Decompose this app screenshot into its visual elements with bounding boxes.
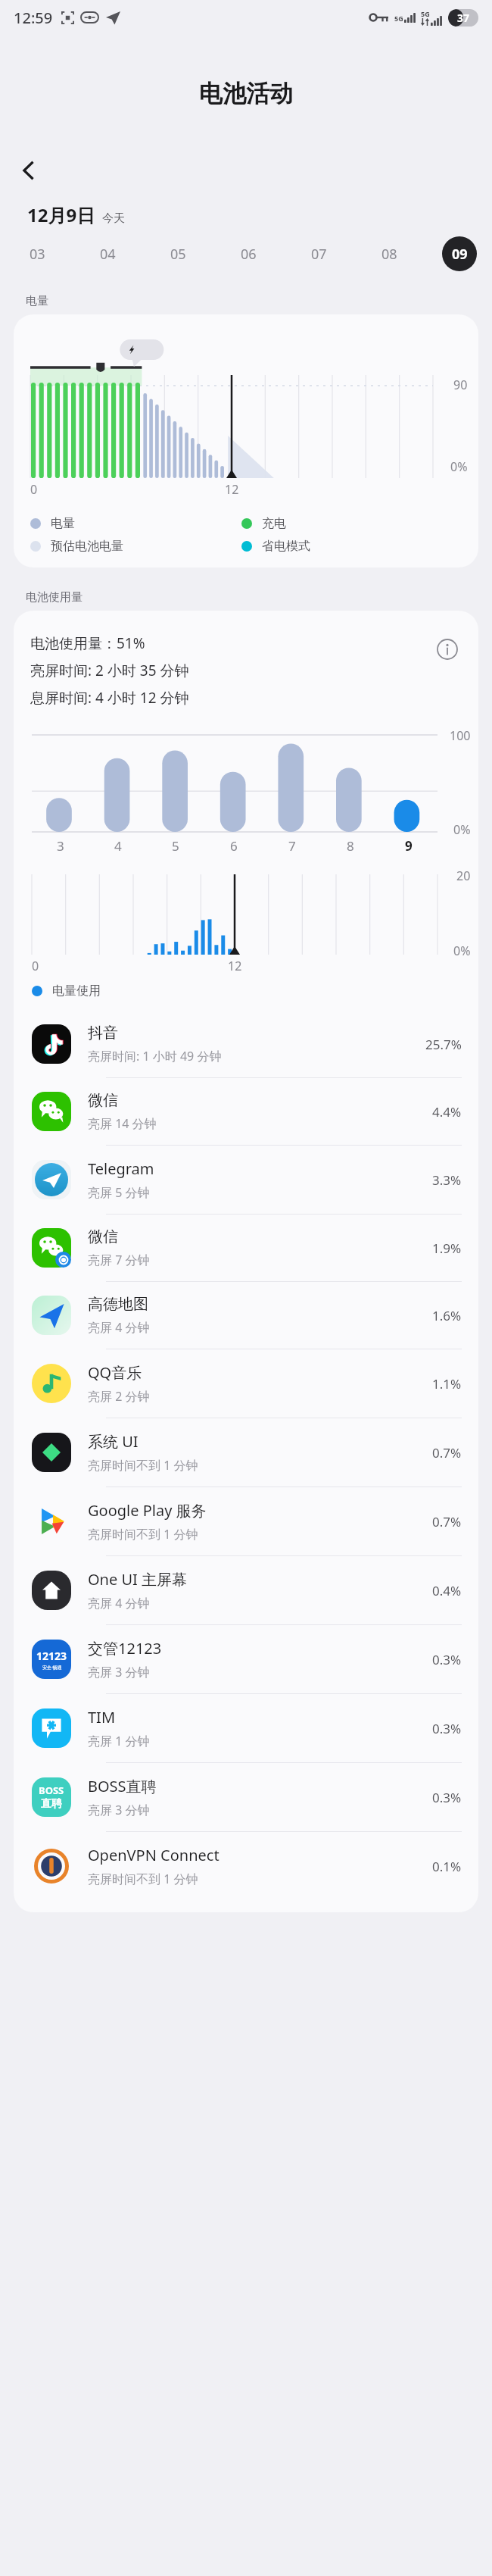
staticText: 预估电池电量 [51, 539, 123, 554]
staticText: 高德地图 [88, 1295, 148, 1314]
staticText: 电池使用量：51% [30, 633, 145, 653]
staticText: 5G [421, 9, 430, 18]
staticText: 微信 [88, 1227, 118, 1246]
staticText: 7 [288, 837, 296, 855]
staticText: 4.4% [432, 1103, 462, 1121]
button[interactable]: 08 [372, 236, 406, 271]
staticText: 09 [452, 245, 468, 264]
staticText: 5G [394, 14, 403, 23]
staticText: 1.1% [432, 1375, 462, 1393]
button[interactable]: Back [9, 151, 48, 190]
staticText: 抖音 [88, 1024, 118, 1043]
staticText: 20 [456, 868, 471, 884]
staticText: 充电 [262, 516, 286, 531]
staticText: 8 [347, 837, 354, 855]
staticText: 1.6% [432, 1307, 462, 1324]
staticText: 100 [450, 727, 471, 744]
staticText: 5 [172, 837, 179, 855]
staticText: 安全·畅通 [42, 1665, 62, 1671]
staticText: 0% [450, 458, 468, 475]
button[interactable]: 高德地图 [14, 1282, 478, 1349]
staticText: 电量 [26, 294, 48, 308]
staticText: 亮屏 3 分钟 [88, 1664, 150, 1680]
staticText: 交管12123 [88, 1638, 162, 1658]
staticText: 1.9% [432, 1240, 462, 1257]
button[interactable]: 系统 UI [14, 1418, 478, 1487]
staticText: 90 [453, 377, 468, 393]
staticText: 0 [32, 958, 39, 974]
staticText: 亮屏时间: 1 小时 49 分钟 [88, 1048, 222, 1064]
staticText: One UI 主屏幕 [88, 1569, 188, 1590]
button[interactable]: 09 [442, 236, 477, 271]
button[interactable]: OpenVPN Connect [14, 1832, 478, 1900]
staticText: 08 [381, 245, 397, 264]
staticText: 今天 [102, 211, 125, 226]
button[interactable]: Google Play 服务 [14, 1487, 478, 1556]
staticText: 电池活动 [199, 79, 293, 108]
staticText: 0.3% [432, 1651, 462, 1668]
staticText: 0 [30, 481, 38, 498]
button[interactable]: 12123 [14, 1625, 478, 1694]
staticText: 0.1% [432, 1858, 462, 1875]
staticText: 0.3% [432, 1789, 462, 1806]
staticText: 亮屏 3 分钟 [88, 1802, 150, 1818]
staticText: 3.3% [432, 1171, 462, 1189]
staticText: 12月9日 [27, 202, 95, 227]
staticText: 37 [457, 11, 470, 25]
button[interactable]: One UI 主屏幕 [14, 1556, 478, 1625]
staticText: 07 [311, 245, 327, 264]
staticText: 亮屏时间不到 1 分钟 [88, 1457, 198, 1474]
staticText: 06 [241, 245, 257, 264]
staticText: 0% [453, 943, 471, 959]
staticText: 12 [228, 958, 242, 974]
staticText: 0.7% [432, 1513, 462, 1530]
staticText: 微信 [88, 1091, 118, 1110]
button[interactable]: 04 [90, 236, 125, 271]
staticText: 4 [114, 837, 122, 855]
staticText: 亮屏 7 分钟 [88, 1252, 150, 1268]
staticText: 省电模式 [262, 539, 310, 554]
button[interactable]: 05 [160, 236, 195, 271]
staticText: 电量使用 [52, 983, 101, 999]
staticText: 亮屏 1 分钟 [88, 1733, 150, 1749]
staticText: 亮屏 4 分钟 [88, 1595, 150, 1612]
button[interactable]: 07 [301, 236, 336, 271]
staticText: BOSS直聘 [88, 1776, 157, 1796]
staticText: BOSS [39, 1784, 64, 1797]
staticText: 12123 [36, 1649, 67, 1663]
staticText: 亮屏 2 分钟 [88, 1388, 150, 1405]
button[interactable]: TIM [14, 1694, 478, 1763]
button[interactable]: 90 [14, 314, 478, 567]
staticText: 亮屏 14 分钟 [88, 1115, 157, 1132]
button[interactable]: 06 [231, 236, 266, 271]
staticText: 系统 UI [88, 1431, 139, 1452]
button[interactable]: 抖音 [14, 1011, 478, 1078]
button[interactable]: Info [431, 633, 463, 665]
staticText: 6 [230, 837, 238, 855]
staticText: 亮屏 5 分钟 [88, 1184, 150, 1201]
staticText: 0.4% [432, 1582, 462, 1599]
staticText: 03 [30, 245, 45, 264]
staticText: 息屏时间: 4 小时 12 分钟 [30, 688, 189, 708]
button[interactable]: BOSS [14, 1763, 478, 1832]
staticText: TIM [88, 1707, 116, 1727]
staticText: 12 [225, 481, 239, 498]
staticText: 04 [100, 245, 116, 264]
staticText: 电量 [51, 516, 75, 531]
staticText: 亮屏时间不到 1 分钟 [88, 1871, 198, 1887]
button[interactable]: QQ音乐 [14, 1349, 478, 1418]
staticText: 9 [405, 837, 413, 855]
staticText: 0.3% [432, 1720, 462, 1737]
button[interactable]: Telegram [14, 1146, 478, 1215]
staticText: 直聘 [41, 1797, 62, 1811]
staticText: Google Play 服务 [88, 1500, 207, 1521]
button[interactable]: 微信 [14, 1078, 478, 1146]
staticText: 3 [57, 837, 64, 855]
staticText: 亮屏时间不到 1 分钟 [88, 1526, 198, 1543]
staticText: 电池使用量 [26, 590, 83, 605]
staticText: 0.7% [432, 1444, 462, 1462]
button[interactable]: 微信 [14, 1215, 478, 1282]
staticText: Telegram [88, 1158, 154, 1179]
staticText: 亮屏时间: 2 小时 35 分钟 [30, 661, 189, 680]
button[interactable]: 03 [20, 236, 54, 271]
